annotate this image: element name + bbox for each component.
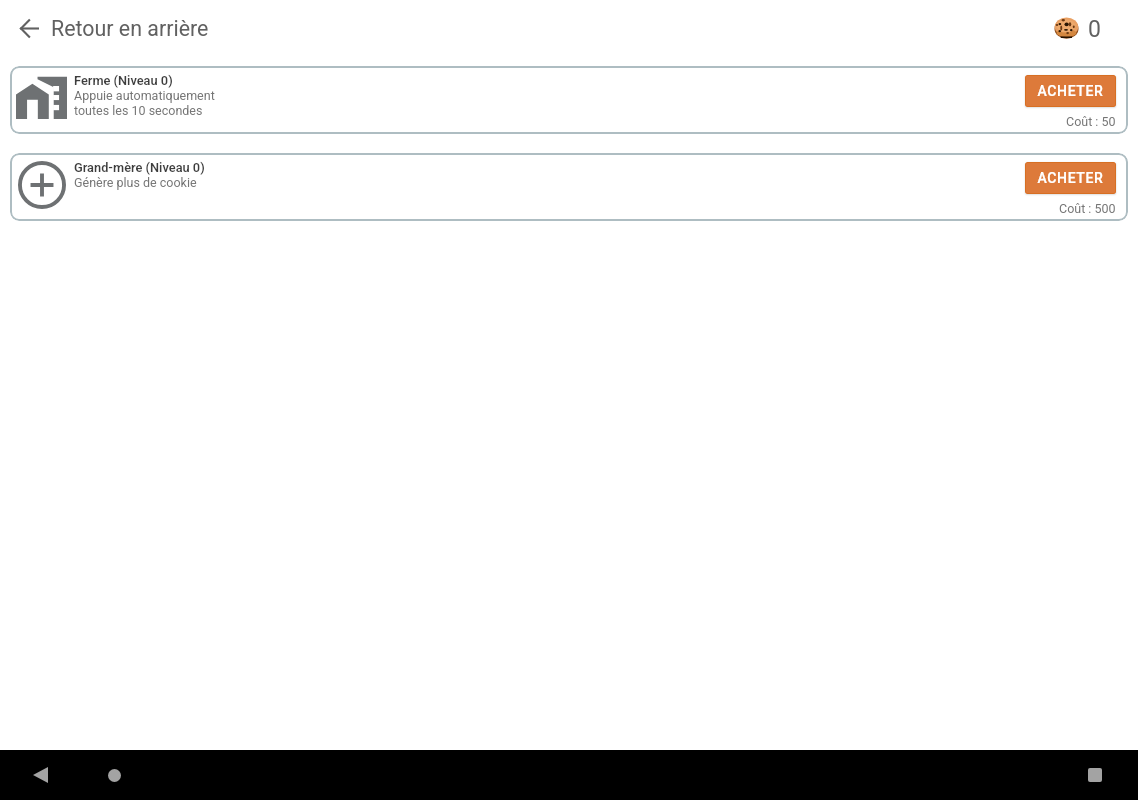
button[interactable]: ACHETER [1025, 75, 1116, 107]
staticText: Ferme (Niveau 0) [74, 73, 173, 88]
button[interactable]: Grand-mère (Niveau 0) [10, 153, 1128, 221]
button[interactable]: Ferme (Niveau 0) [10, 66, 1128, 134]
staticText: 0 [1088, 16, 1101, 43]
button[interactable]: ACHETER [1025, 162, 1116, 194]
staticText: Coût : 50 [1066, 114, 1116, 129]
staticText: Grand-mère (Niveau 0) [74, 160, 205, 175]
button[interactable]: Retour [9, 8, 49, 48]
staticText: Retour en arrière [51, 16, 209, 41]
button[interactable]: Recents [1081, 761, 1109, 789]
staticText: Coût : 500 [1059, 201, 1116, 216]
staticText: ACHETER [1037, 170, 1104, 186]
staticText: Appuie automatiquement toutes les 10 sec… [74, 88, 215, 118]
button[interactable]: Back [26, 761, 54, 789]
staticText: Génère plus de cookie [74, 175, 197, 190]
staticText: ACHETER [1037, 83, 1104, 99]
button[interactable]: Home [100, 761, 128, 789]
